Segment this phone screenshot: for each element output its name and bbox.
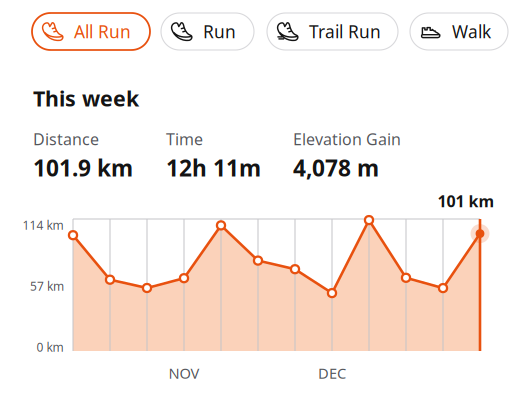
staticText: Trail Run xyxy=(309,20,381,43)
staticText: Run xyxy=(203,20,236,43)
staticText: 101.9 km xyxy=(33,153,133,183)
button[interactable]: Trail Run xyxy=(267,13,398,50)
staticText: 12h 11m xyxy=(166,153,261,183)
staticText: Walk xyxy=(452,20,491,43)
staticText: 0 km xyxy=(36,339,63,355)
button[interactable]: All Run xyxy=(32,13,150,50)
staticText: This week xyxy=(33,84,139,112)
staticText: 114 km xyxy=(22,217,63,233)
button[interactable]: Walk xyxy=(410,13,508,50)
staticText: Time xyxy=(166,128,203,149)
staticText: 101 km xyxy=(437,190,494,212)
staticText: DEC xyxy=(318,363,346,383)
staticText: Distance xyxy=(33,128,99,149)
staticText: 4,078 m xyxy=(293,153,379,183)
staticText: 57 km xyxy=(30,278,64,294)
staticText: NOV xyxy=(168,363,199,383)
button[interactable]: Run xyxy=(161,13,254,50)
staticText: All Run xyxy=(74,20,131,43)
staticText: Elevation Gain xyxy=(293,128,401,149)
